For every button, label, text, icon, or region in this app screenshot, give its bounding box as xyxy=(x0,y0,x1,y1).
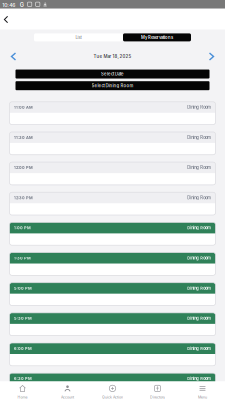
staticText: Tue Mar 18, 2025 xyxy=(93,54,131,59)
button[interactable]: 5:30 PM xyxy=(9,313,215,336)
staticText: Account xyxy=(61,395,74,399)
staticText: 6:00 PM xyxy=(14,346,32,351)
button[interactable]: 6:30 PM xyxy=(9,373,215,396)
staticText: Dining Room xyxy=(187,165,211,170)
staticText: Dining Room xyxy=(187,286,211,291)
button[interactable]: 11:00 AM xyxy=(9,102,215,125)
button[interactable]: 5:00 PM xyxy=(9,283,215,305)
staticText: 12:30 PM xyxy=(14,195,33,200)
button[interactable]: List xyxy=(34,33,123,41)
staticText: Dining Room xyxy=(187,225,211,230)
button[interactable]: Account xyxy=(45,381,90,400)
button[interactable]: Select Dining Room xyxy=(15,81,209,90)
button[interactable]: 6:00 PM xyxy=(9,343,215,366)
staticText: Menu xyxy=(198,395,207,399)
button[interactable]: Quick Action xyxy=(90,381,135,400)
staticText: Quick Action xyxy=(102,395,123,399)
staticText: Home xyxy=(17,395,27,399)
button[interactable]: Previous day xyxy=(2,49,24,63)
staticText: 1:00 PM xyxy=(14,225,31,230)
button[interactable]: Next day xyxy=(200,49,222,63)
button[interactable]: Back xyxy=(0,12,13,26)
button[interactable]: Home xyxy=(0,381,45,400)
staticText: My Reservations xyxy=(141,35,173,40)
staticText: 5:00 PM xyxy=(14,286,32,291)
button[interactable]: 1:30 PM xyxy=(9,253,215,275)
button[interactable]: 12:00 PM xyxy=(9,162,215,185)
button[interactable]: Menu xyxy=(180,381,225,400)
staticText: Dining Room xyxy=(187,195,211,200)
staticText: List xyxy=(75,35,81,40)
staticText: Select Dining Room xyxy=(91,83,133,88)
staticText: Dining Room xyxy=(187,316,211,321)
staticText: 6:30 PM xyxy=(14,376,32,381)
staticText: 10:46 xyxy=(2,2,15,8)
staticText: G xyxy=(20,2,24,8)
staticText: 5:30 PM xyxy=(14,316,32,321)
button[interactable]: Directory xyxy=(135,381,180,400)
staticText: Dining Room xyxy=(187,346,211,351)
staticText: 11:00 AM xyxy=(14,105,33,110)
staticText: Dining Room xyxy=(187,135,211,140)
staticText: Dining Room xyxy=(187,376,211,381)
staticText: 12:00 PM xyxy=(14,165,33,170)
staticText: Dining Room xyxy=(187,105,211,110)
staticText: Dining Room xyxy=(187,256,211,260)
button[interactable]: Select Date xyxy=(15,69,209,78)
staticText: Directory xyxy=(150,395,165,399)
staticText: 1:30 PM xyxy=(14,256,31,260)
button[interactable]: My Reservations xyxy=(123,33,191,41)
button[interactable]: 1:00 PM xyxy=(9,222,215,245)
staticText: 11:30 AM xyxy=(14,135,33,140)
staticText: Select Date xyxy=(101,71,124,77)
button[interactable]: 12:30 PM xyxy=(9,192,215,215)
button[interactable]: 11:30 AM xyxy=(9,132,215,155)
